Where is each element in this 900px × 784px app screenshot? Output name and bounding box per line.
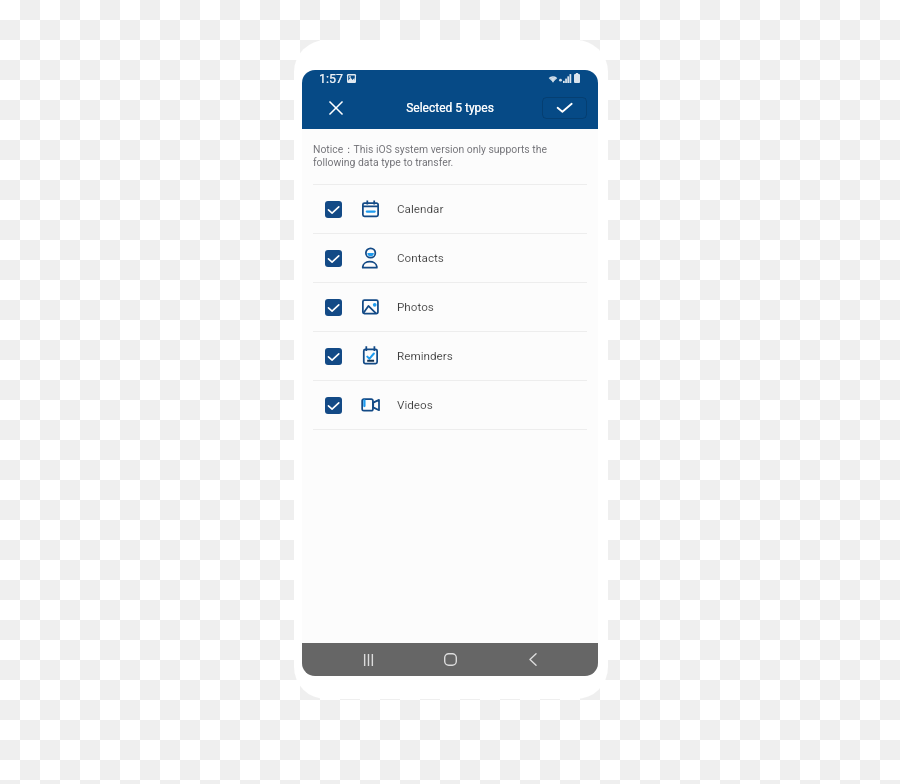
button[interactable]: Contacts	[313, 234, 587, 282]
button[interactable]: Reminders	[313, 332, 587, 380]
button[interactable]: Confirm	[542, 97, 587, 119]
button[interactable]: Back	[513, 643, 553, 676]
staticText: Calendar	[397, 202, 444, 216]
button[interactable]: Recent apps	[348, 643, 388, 676]
button[interactable]: Home	[430, 643, 470, 676]
button[interactable]: Close	[323, 95, 349, 121]
staticText: 1:57	[319, 71, 343, 86]
button[interactable]: Calendar	[313, 185, 587, 233]
staticText: Notice：This iOS system version only supp…	[313, 143, 547, 156]
staticText: Reminders	[397, 349, 453, 363]
button[interactable]: Videos	[313, 381, 587, 429]
staticText: following data type to transfer.	[313, 156, 454, 168]
button[interactable]: Photos	[313, 283, 587, 331]
staticText: Contacts	[397, 251, 444, 265]
staticText: Selected 5 types	[406, 101, 494, 115]
staticText: Videos	[397, 398, 433, 412]
staticText: Photos	[397, 300, 434, 314]
